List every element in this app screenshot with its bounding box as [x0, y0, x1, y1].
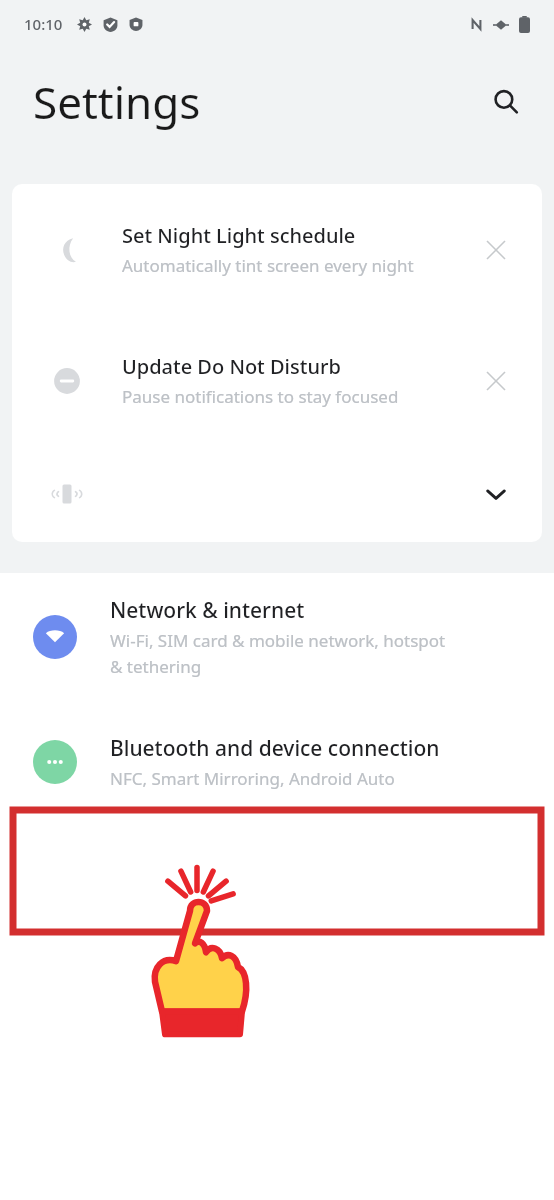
staticText: Update Do Not Disturb: [122, 353, 341, 380]
button[interactable]: Update Do Not Disturb: [12, 315, 542, 446]
button[interactable]: Set Night Light schedule: [12, 184, 542, 315]
staticText: Settings: [33, 72, 201, 132]
button[interactable]: Expand: [12, 446, 542, 542]
staticText: NFC, Smart Mirroring, Android Auto: [110, 767, 395, 790]
staticText: Pause notifications to stay focused: [122, 385, 399, 408]
button[interactable]: Expand: [476, 474, 516, 514]
staticText: Set Night Light schedule: [122, 222, 356, 249]
staticText: Bluetooth and device connection: [110, 734, 440, 763]
button[interactable]: Bluetooth and device connection: [0, 701, 554, 823]
staticText: Automatically tint screen every night: [122, 254, 414, 277]
button[interactable]: Search: [482, 78, 530, 126]
button[interactable]: Dismiss: [474, 228, 518, 272]
button[interactable]: Dismiss: [474, 359, 518, 403]
staticText: Network & internet: [110, 596, 305, 625]
staticText: Wi-Fi, SIM card & mobile network, hotspo…: [110, 629, 446, 678]
staticText: 10:10: [24, 14, 63, 34]
button[interactable]: Network & internet: [0, 573, 554, 701]
